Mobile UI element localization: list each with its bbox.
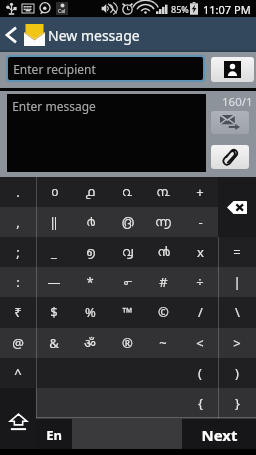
staticText: ൨ xyxy=(122,186,132,199)
button[interactable]: ൮ xyxy=(109,237,145,267)
staticText: 11:07 PM xyxy=(203,2,251,17)
staticText: ൫ xyxy=(121,216,134,229)
button[interactable]: + xyxy=(182,177,218,207)
button[interactable]: Enter recipient xyxy=(8,57,203,80)
staticText: En xyxy=(46,426,62,444)
button[interactable]: $ xyxy=(36,297,72,327)
staticText: ൭ xyxy=(86,246,95,259)
staticText: < xyxy=(196,334,204,352)
button[interactable]: @ xyxy=(0,328,36,358)
staticText: ൪ xyxy=(86,216,95,229)
button[interactable]: ) xyxy=(218,358,256,388)
button[interactable]: ÷ xyxy=(182,267,218,297)
button[interactable]: ~ xyxy=(145,328,181,358)
button[interactable]: # xyxy=(145,267,181,297)
button[interactable]: : xyxy=(0,267,36,297)
button[interactable] xyxy=(36,388,72,418)
button[interactable]: Contacts xyxy=(211,57,254,82)
staticText: { xyxy=(198,394,203,412)
staticText: > xyxy=(233,334,241,352)
staticText: , xyxy=(16,213,20,231)
button[interactable]: Back xyxy=(0,17,22,52)
button[interactable]: ൯ xyxy=(145,237,181,267)
button[interactable]: Backspace xyxy=(218,177,256,237)
button[interactable]: ® xyxy=(109,328,145,358)
button[interactable]: ൩ xyxy=(145,177,181,207)
staticText: — xyxy=(47,273,61,291)
button[interactable]: ൳ xyxy=(109,267,145,297)
button[interactable]: ( xyxy=(182,358,218,388)
button[interactable]: — xyxy=(36,267,72,297)
button[interactable]: < xyxy=(182,328,218,358)
staticText: ൮ xyxy=(122,246,133,259)
button[interactable]: _ xyxy=(36,237,72,267)
button[interactable]: Send xyxy=(211,111,249,134)
button[interactable]: = xyxy=(218,237,256,267)
staticText: + xyxy=(196,183,204,201)
staticText: ‖ xyxy=(50,213,58,231)
button[interactable]: ൬ xyxy=(145,207,181,237)
staticText: ™ xyxy=(122,303,133,321)
button[interactable]: & xyxy=(36,328,72,358)
button[interactable]: / xyxy=(182,297,218,327)
button[interactable]: ൪ xyxy=(72,207,108,237)
staticText: ; xyxy=(16,243,20,261)
button[interactable]: Shift xyxy=(0,388,36,455)
staticText: } xyxy=(235,394,240,412)
staticText: | xyxy=(233,273,241,291)
staticText: 160/1 xyxy=(222,94,253,110)
button[interactable]: ൦ xyxy=(36,177,72,207)
button[interactable]: Attach xyxy=(211,145,249,169)
button[interactable]: ₹ xyxy=(0,297,36,327)
staticText: x xyxy=(197,243,204,261)
button[interactable] xyxy=(36,358,72,388)
button[interactable]: } xyxy=(218,388,256,418)
button[interactable]: * xyxy=(72,267,108,297)
button[interactable] xyxy=(72,388,108,418)
button[interactable]: > xyxy=(218,328,256,358)
button[interactable]: ™ xyxy=(109,297,145,327)
button[interactable] xyxy=(109,388,145,418)
button[interactable] xyxy=(145,388,181,418)
button[interactable]: ൭ xyxy=(72,237,108,267)
staticText: = xyxy=(233,243,241,261)
staticText: . xyxy=(16,183,20,201)
staticText: Enter recipient xyxy=(13,61,96,77)
staticText: _ xyxy=(51,243,57,261)
button[interactable]: Next xyxy=(182,419,256,450)
button[interactable]: ൫ xyxy=(109,207,145,237)
button[interactable]: ൨ xyxy=(109,177,145,207)
staticText: : xyxy=(16,273,20,291)
staticText: $ xyxy=(50,303,58,321)
button[interactable]: Enter message xyxy=(7,94,206,172)
button[interactable]: ^ xyxy=(0,358,36,388)
staticText: ₹ xyxy=(14,303,22,321)
staticText: Cal xyxy=(58,8,66,15)
staticText: ൳ xyxy=(123,276,132,289)
button[interactable]: - xyxy=(182,207,218,237)
button[interactable]: % xyxy=(72,297,108,327)
button[interactable]: Space xyxy=(72,419,182,450)
staticText: ÷ xyxy=(196,273,204,291)
button[interactable]: New message xyxy=(22,17,46,52)
button[interactable]: . xyxy=(0,177,36,207)
button[interactable]: © xyxy=(145,297,181,327)
staticText: ( xyxy=(198,364,202,382)
button[interactable]: | xyxy=(218,267,256,297)
staticText: ® xyxy=(122,334,133,352)
button[interactable]: \ xyxy=(218,297,256,327)
button[interactable]: x xyxy=(182,237,218,267)
staticText: @ xyxy=(12,334,24,352)
staticText: / xyxy=(198,303,203,321)
button[interactable]: ൧ xyxy=(72,177,108,207)
staticText: ^ xyxy=(14,364,22,382)
button[interactable]: { xyxy=(182,388,218,418)
button[interactable]: , xyxy=(0,207,36,237)
button[interactable]: ॐ xyxy=(72,328,108,358)
button[interactable]: ‖ xyxy=(36,207,72,237)
button[interactable]: ; xyxy=(0,237,36,267)
button[interactable]: En xyxy=(36,419,72,450)
